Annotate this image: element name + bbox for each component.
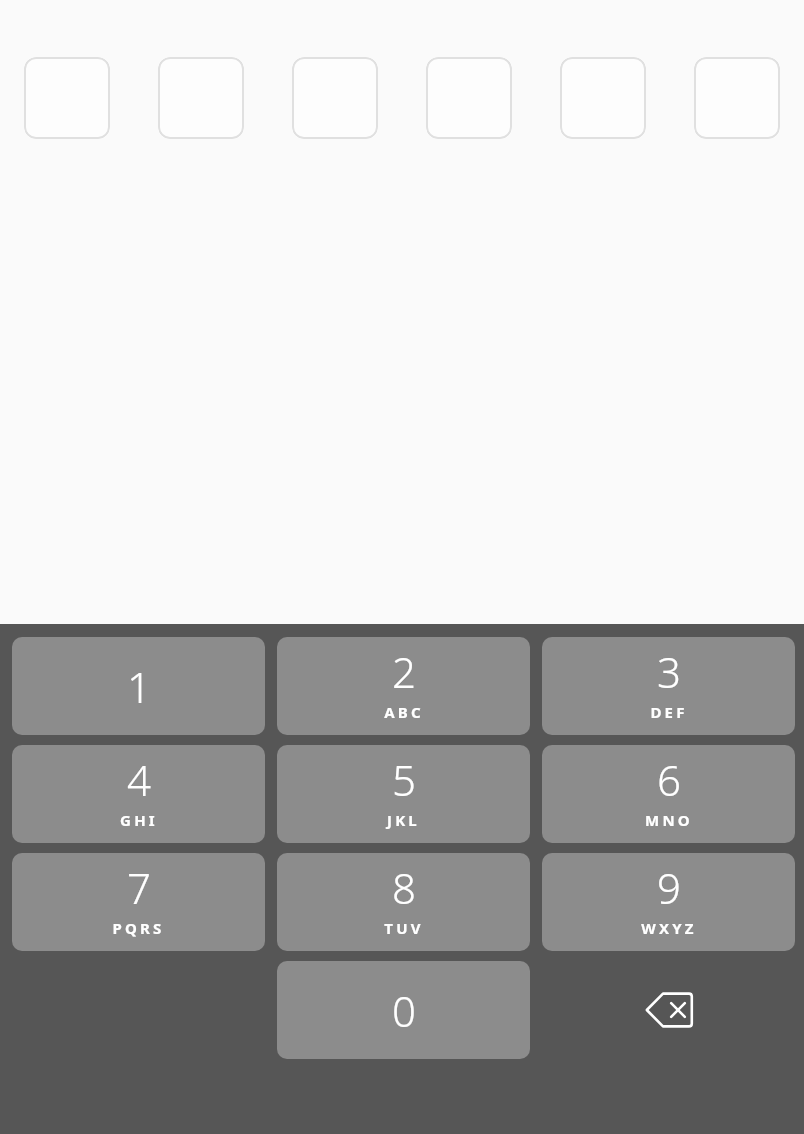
button[interactable]: 1 bbox=[12, 637, 265, 735]
button[interactable]: 3 bbox=[542, 637, 795, 735]
button[interactable] bbox=[560, 57, 646, 139]
staticText: WXYZ bbox=[641, 918, 697, 938]
button[interactable] bbox=[694, 57, 780, 139]
staticText: 0 bbox=[392, 982, 416, 1039]
staticText: 1 bbox=[127, 658, 151, 715]
staticText: 9 bbox=[657, 859, 681, 916]
button[interactable] bbox=[426, 57, 512, 139]
button[interactable]: 8 bbox=[277, 853, 530, 951]
button[interactable]: 7 bbox=[12, 853, 265, 951]
button[interactable] bbox=[292, 57, 378, 139]
staticText: 6 bbox=[657, 751, 681, 808]
button[interactable]: Backspace bbox=[542, 961, 795, 1059]
staticText: PQRS bbox=[112, 918, 165, 938]
staticText: JKL bbox=[387, 810, 420, 830]
button[interactable]: 9 bbox=[542, 853, 795, 951]
button[interactable] bbox=[158, 57, 244, 139]
staticText: GHI bbox=[120, 810, 158, 830]
staticText: 5 bbox=[392, 751, 416, 808]
staticText: 4 bbox=[127, 751, 151, 808]
button[interactable]: 4 bbox=[12, 745, 265, 843]
button[interactable]: 5 bbox=[277, 745, 530, 843]
button[interactable] bbox=[24, 57, 110, 139]
staticText: ABC bbox=[384, 702, 424, 722]
staticText: TUV bbox=[384, 918, 424, 938]
button[interactable]: 6 bbox=[542, 745, 795, 843]
button[interactable]: 2 bbox=[277, 637, 530, 735]
button[interactable]: 0 bbox=[277, 961, 530, 1059]
staticText: MNO bbox=[645, 810, 693, 830]
staticText: 2 bbox=[392, 643, 416, 700]
staticText: 7 bbox=[127, 859, 151, 916]
staticText: DEF bbox=[650, 702, 688, 722]
staticText: 3 bbox=[657, 643, 681, 700]
staticText: 8 bbox=[392, 859, 416, 916]
